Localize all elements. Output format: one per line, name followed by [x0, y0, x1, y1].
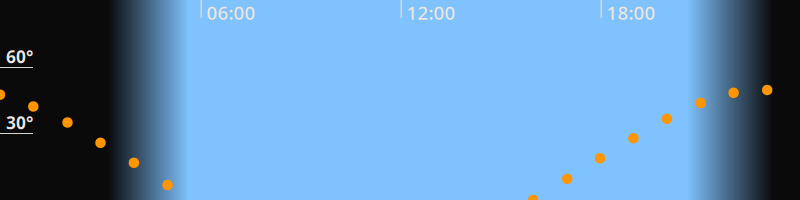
staticText: 60° — [6, 45, 33, 68]
staticText: 18:00 — [606, 0, 655, 25]
staticText: 30° — [6, 111, 33, 134]
staticText: 12:00 — [406, 0, 455, 25]
staticText: 06:00 — [206, 0, 255, 25]
